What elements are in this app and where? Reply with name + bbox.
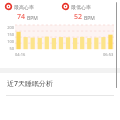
other: Heart rate [5,3,12,10]
staticText: 近7天睡眠分析 [7,79,54,89]
button[interactable]: 近7天睡眠分析 [0,73,120,95]
staticText: 50 [9,46,14,51]
button[interactable]: Heart rate [0,3,60,22]
button[interactable]: Heart rate [0,0,120,68]
staticText: 52 [74,12,83,22]
staticText: 100 [7,39,14,44]
staticText: 最低心率 [71,4,91,10]
staticText: 74 [17,12,26,22]
other: Heart rate [62,3,69,10]
button[interactable]: Heart rate [60,3,120,22]
staticText: 200 [7,25,14,30]
staticText: BPM [84,15,95,22]
staticText: 150 [7,32,14,37]
staticText: 04:16 [15,52,26,57]
staticText: BPM [27,15,38,22]
staticText: 最高心率 [14,4,34,10]
staticText: 06:53 [103,52,114,57]
